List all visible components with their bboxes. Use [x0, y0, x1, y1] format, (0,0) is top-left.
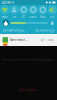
button[interactable]: Daten: [28, 5, 38, 19]
staticText: Keine weiteren Benachrichtigungen: [2, 58, 55, 61]
button[interactable]: Quick Settings: [35, 29, 54, 32]
staticText: vor 1 Min.: [40, 38, 54, 42]
staticText: Ort: [12, 15, 16, 19]
button[interactable]: Akku: [38, 5, 47, 19]
button[interactable]: WLAN: [0, 5, 9, 19]
staticText: Daten: [29, 15, 37, 19]
staticText: 20:39: [1, 0, 10, 5]
button[interactable]: BT: [19, 5, 28, 19]
button[interactable]: Screenshot aufgenommen: [0, 34, 57, 46]
staticText: Benachrichtigungen: [3, 29, 27, 32]
staticText: WLAN: [1, 15, 8, 19]
button[interactable]: Ort: [9, 5, 19, 19]
staticText: Quick Settings: [35, 29, 54, 32]
staticText: Akku: [40, 15, 46, 19]
staticText: Screenshot aufgenommen: [10, 38, 28, 42]
button[interactable]: Alle löschen: [19, 88, 37, 92]
staticText: Alle löschen: [19, 88, 37, 92]
staticText: BT: [22, 15, 25, 19]
button[interactable]: Ton: [47, 5, 57, 19]
staticText: Ton: [50, 15, 55, 19]
